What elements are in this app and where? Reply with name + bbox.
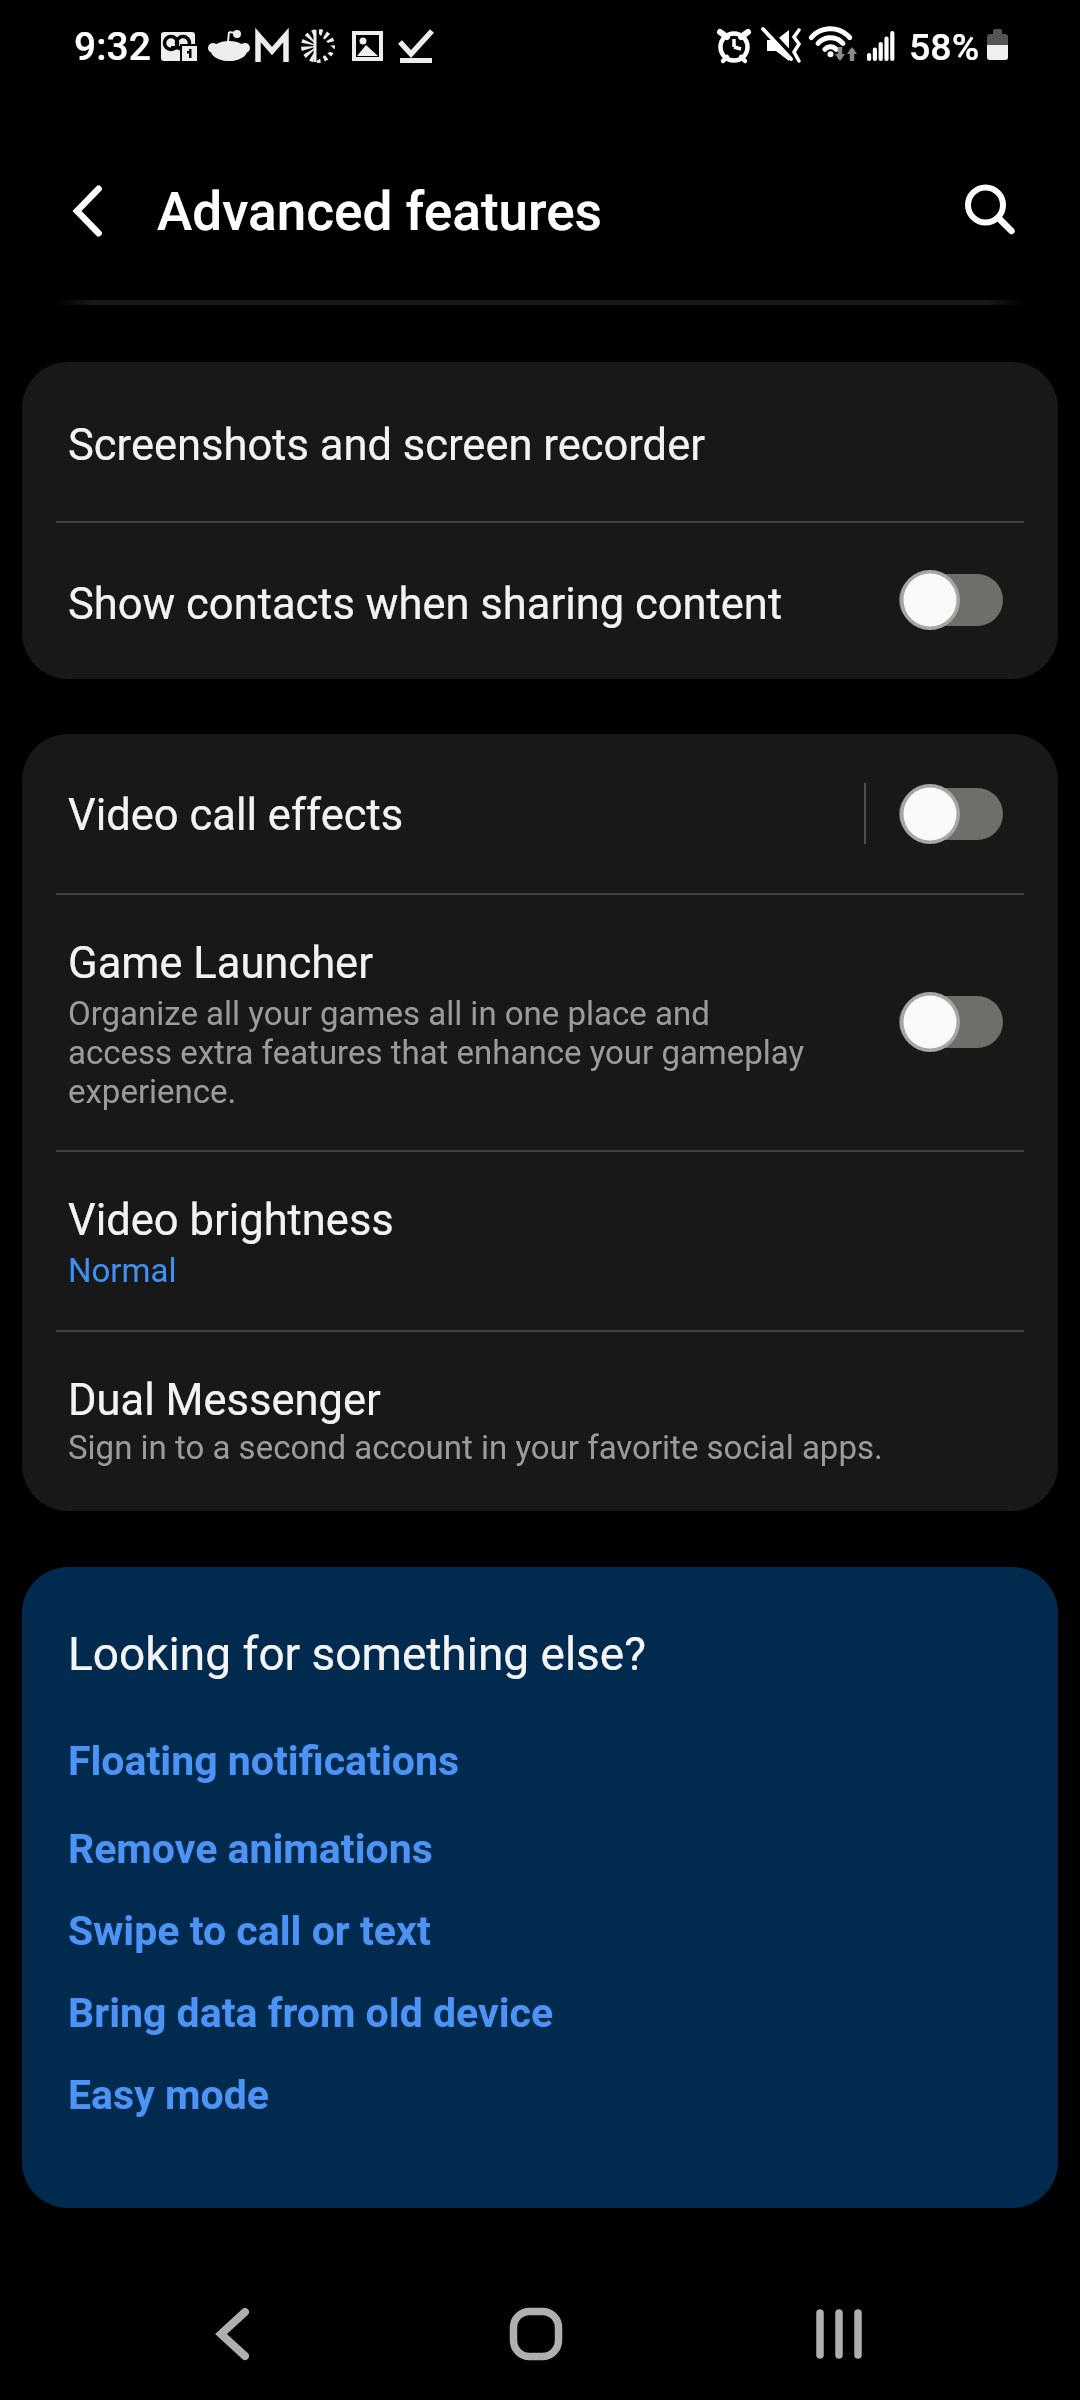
button[interactable]: Back (44, 166, 134, 256)
button[interactable]: Floating notifications (22, 1735, 1058, 1823)
staticText: Sign in to a second account in your favo… (68, 1426, 883, 1468)
staticText: Dual Messenger (68, 1374, 381, 1426)
button[interactable]: Swipe to call or text (22, 1905, 1058, 1987)
staticText: Easy mode (68, 2069, 269, 2119)
button[interactable]: Search (940, 160, 1030, 250)
button[interactable]: Bring data from old device (22, 1987, 1058, 2069)
staticText: Show contacts when sharing content (68, 578, 945, 630)
staticText: Video brightness (68, 1194, 394, 1246)
button[interactable]: Home (476, 2279, 596, 2389)
button[interactable]: Video brightness (22, 1150, 1058, 1330)
staticText: Advanced features (157, 179, 602, 243)
staticText: Floating notifications (68, 1735, 460, 1785)
staticText: Swipe to call or text (68, 1905, 431, 1955)
button[interactable] (899, 783, 1003, 845)
staticText: Screenshots and screen recorder (68, 419, 705, 471)
button[interactable]: Recent apps (779, 2279, 899, 2389)
staticText: Game Launcher (68, 937, 373, 989)
staticText: Normal (68, 1249, 177, 1291)
button[interactable]: Dual Messenger (22, 1330, 1058, 1511)
button[interactable]: Game Launcher (22, 893, 1058, 1150)
staticText: Bring data from old device (68, 1987, 554, 2037)
button[interactable]: Remove animations (22, 1823, 1058, 1905)
button[interactable]: Video call effects (22, 734, 864, 893)
button[interactable]: Back (173, 2279, 293, 2389)
staticText: Looking for something else? (68, 1626, 646, 1682)
staticText: Organize all your games all in one place… (68, 995, 813, 1112)
button[interactable]: Screenshots and screen recorder (22, 362, 1058, 521)
button[interactable]: Easy mode (22, 2069, 1058, 2151)
staticText: 58% (909, 24, 980, 70)
staticText: 9:32 (74, 24, 151, 70)
staticText: Video call effects (68, 789, 404, 841)
button[interactable]: Show contacts when sharing content (22, 521, 1058, 679)
staticText: Remove animations (68, 1823, 433, 1873)
